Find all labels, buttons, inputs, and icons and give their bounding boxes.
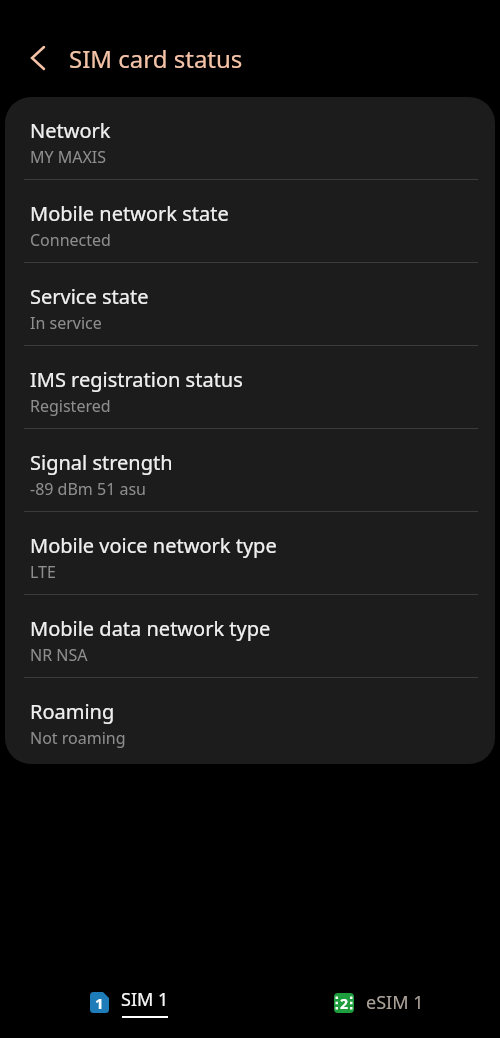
staticText: Signal strength — [30, 449, 173, 476]
button[interactable]: Mobile voice network type — [5, 512, 495, 594]
staticText: MY MAXIS — [30, 146, 107, 168]
staticText: IMS registration status — [30, 366, 243, 393]
staticText: LTE — [30, 561, 56, 583]
staticText: SIM card status — [69, 42, 243, 75]
button[interactable]: Service state — [5, 263, 495, 345]
staticText: -89 dBm 51 asu — [30, 478, 146, 500]
staticText: SIM 1 — [121, 987, 169, 1012]
staticText: Roaming — [30, 698, 115, 725]
staticText: Mobile voice network type — [30, 532, 277, 559]
button[interactable]: 1 — [0, 962, 250, 1038]
staticText: Mobile network state — [30, 200, 229, 227]
staticText: 2 — [340, 994, 349, 1013]
staticText: Not roaming — [30, 727, 126, 749]
staticText: Mobile data network type — [30, 615, 271, 642]
staticText: Service state — [30, 283, 149, 310]
staticText: Connected — [30, 229, 111, 251]
button[interactable]: Mobile network state — [5, 180, 495, 262]
staticText: eSIM 1 — [366, 990, 424, 1015]
staticText: In service — [30, 312, 102, 334]
button[interactable]: 2 — [250, 962, 500, 1038]
button[interactable]: Network — [5, 97, 495, 179]
staticText: Registered — [30, 395, 111, 417]
button[interactable]: Signal strength — [5, 429, 495, 511]
staticText: Network — [30, 117, 111, 144]
staticText: 1 — [95, 993, 104, 1013]
staticText: NR NSA — [30, 644, 88, 666]
button[interactable] — [18, 38, 58, 78]
button[interactable]: Mobile data network type — [5, 595, 495, 677]
button[interactable]: IMS registration status — [5, 346, 495, 428]
button[interactable]: Roaming — [5, 678, 495, 760]
